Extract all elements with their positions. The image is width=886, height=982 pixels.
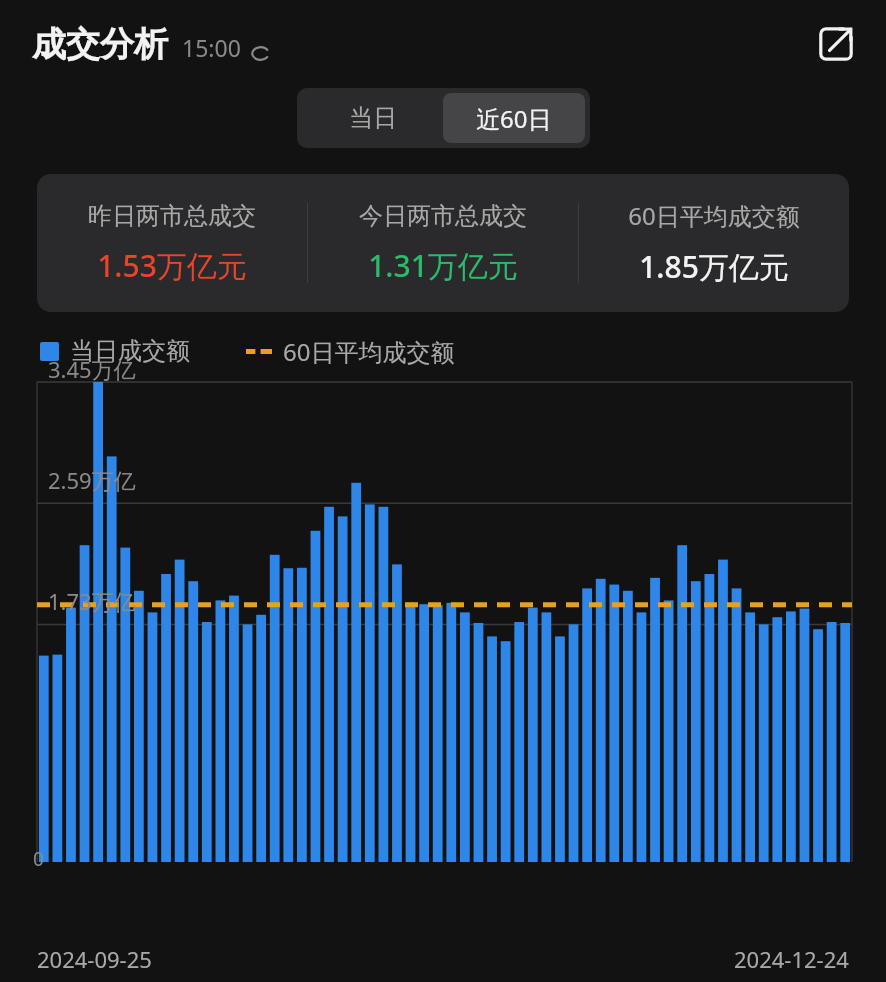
staticText: 2.59万亿 xyxy=(48,465,136,495)
staticText: 1.53万亿元 xyxy=(97,245,247,286)
staticText: 2024-09-25 xyxy=(37,944,152,974)
staticText: 0 xyxy=(33,846,44,872)
staticText: 60日平均成交额 xyxy=(283,335,455,368)
button[interactable]: 昨日两市总成交 xyxy=(37,174,849,312)
staticText: 近60日 xyxy=(476,102,552,135)
staticText: 1.85万亿元 xyxy=(639,246,789,287)
staticText: 3.45万亿 xyxy=(48,354,136,384)
staticText: 1.31万亿元 xyxy=(368,245,518,286)
staticText: 昨日两市总成交 xyxy=(88,201,256,231)
button[interactable]: 近60日 xyxy=(443,93,585,143)
staticText: 当日 xyxy=(349,103,397,133)
staticText: 2024-12-24 xyxy=(734,944,849,974)
staticText: 60日平均成交额 xyxy=(628,199,800,232)
staticText: 1.73万亿 xyxy=(48,586,136,616)
staticText: 当日成交额 xyxy=(70,336,190,366)
staticText: 15:00 xyxy=(182,32,241,63)
button[interactable]: 当日 xyxy=(302,93,443,143)
staticText: 今日两市总成交 xyxy=(359,201,527,231)
staticText: 成交分析 xyxy=(32,23,168,66)
button[interactable]: 打开 xyxy=(808,16,864,72)
